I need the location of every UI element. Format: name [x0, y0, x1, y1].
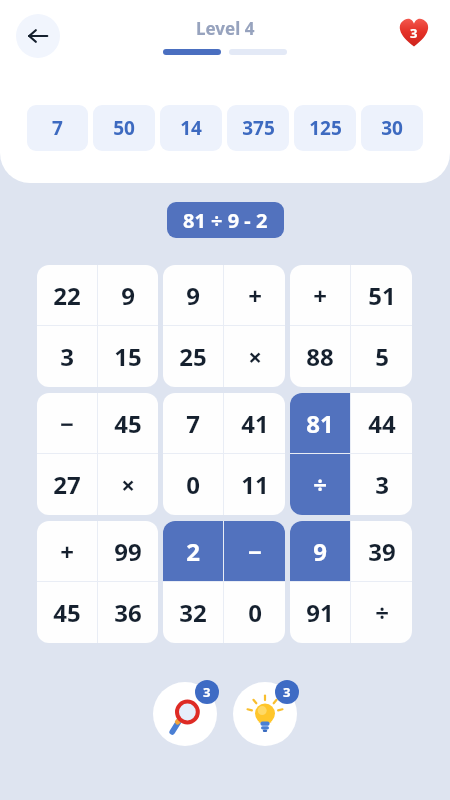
- button[interactable]: 25: [163, 326, 223, 387]
- staticText: −: [248, 535, 262, 568]
- button[interactable]: 91: [290, 582, 350, 643]
- staticText: 7: [52, 115, 63, 141]
- button[interactable]: −: [224, 521, 285, 581]
- button[interactable]: Find: [149, 678, 221, 750]
- button[interactable]: 41: [224, 393, 285, 453]
- button[interactable]: 3: [37, 326, 97, 387]
- staticText: 50: [113, 115, 135, 141]
- button[interactable]: 0: [224, 582, 285, 643]
- button[interactable]: 7: [27, 105, 88, 151]
- staticText: 9: [313, 535, 327, 568]
- button[interactable]: 99: [98, 521, 158, 581]
- staticText: +: [313, 279, 327, 312]
- staticText: 32: [179, 596, 207, 629]
- button[interactable]: 45: [37, 582, 97, 643]
- button[interactable]: 32: [163, 582, 223, 643]
- staticText: 3: [283, 683, 291, 701]
- staticText: 41: [241, 407, 269, 440]
- staticText: 2: [186, 535, 200, 568]
- button[interactable]: −: [37, 393, 97, 453]
- staticText: 45: [53, 596, 81, 629]
- button[interactable]: 11: [224, 454, 285, 515]
- button[interactable]: ÷: [351, 582, 412, 643]
- staticText: 27: [53, 468, 81, 501]
- button[interactable]: ×: [98, 454, 158, 515]
- staticText: 375: [242, 115, 275, 141]
- button[interactable]: 9: [290, 521, 350, 581]
- staticText: 45: [114, 407, 142, 440]
- staticText: 36: [114, 596, 142, 629]
- button[interactable]: 50: [93, 105, 155, 151]
- button[interactable]: 88: [290, 326, 350, 387]
- staticText: 3: [375, 468, 389, 501]
- staticText: 7: [186, 407, 200, 440]
- staticText: 3: [410, 24, 418, 42]
- button[interactable]: 81 ÷ 9 - 2: [183, 202, 268, 238]
- button[interactable]: 14: [160, 105, 222, 151]
- button[interactable]: +: [37, 521, 97, 581]
- staticText: 0: [186, 468, 200, 501]
- button[interactable]: 45: [98, 393, 158, 453]
- button[interactable]: 7: [163, 393, 223, 453]
- button[interactable]: 30: [361, 105, 423, 151]
- staticText: 91: [306, 596, 334, 629]
- button[interactable]: 15: [98, 326, 158, 387]
- staticText: 22: [53, 279, 81, 312]
- staticText: −: [60, 407, 74, 440]
- staticText: 14: [180, 115, 202, 141]
- button[interactable]: Hint: [229, 678, 301, 750]
- button[interactable]: 44: [351, 393, 412, 453]
- staticText: 81 ÷ 9 - 2: [183, 207, 268, 234]
- button[interactable]: Back: [16, 14, 60, 58]
- button[interactable]: 9: [163, 265, 223, 325]
- staticText: 15: [114, 340, 142, 373]
- staticText: 81: [306, 407, 334, 440]
- button[interactable]: ÷: [290, 454, 350, 515]
- staticText: 125: [309, 115, 342, 141]
- button[interactable]: 36: [98, 582, 158, 643]
- staticText: 25: [179, 340, 207, 373]
- button[interactable]: 51: [351, 265, 412, 325]
- button[interactable]: 5: [351, 326, 412, 387]
- button[interactable]: 22: [37, 265, 97, 325]
- button[interactable]: 9: [98, 265, 158, 325]
- button[interactable]: 3: [351, 454, 412, 515]
- staticText: +: [248, 279, 262, 312]
- button[interactable]: 375: [227, 105, 289, 151]
- staticText: 3: [60, 340, 74, 373]
- staticText: 99: [114, 535, 142, 568]
- staticText: ×: [248, 340, 262, 373]
- staticText: 51: [368, 279, 396, 312]
- staticText: 88: [306, 340, 334, 373]
- staticText: 9: [186, 279, 200, 312]
- button[interactable]: 27: [37, 454, 97, 515]
- staticText: 11: [241, 468, 269, 501]
- button[interactable]: 0: [163, 454, 223, 515]
- staticText: 3: [203, 683, 211, 701]
- staticText: Level 4: [196, 17, 255, 40]
- staticText: ×: [121, 468, 135, 501]
- staticText: 5: [375, 340, 389, 373]
- staticText: 30: [381, 115, 403, 141]
- staticText: 9: [121, 279, 135, 312]
- button[interactable]: 125: [294, 105, 356, 151]
- button[interactable]: 2: [163, 521, 223, 581]
- button[interactable]: 81: [290, 393, 350, 453]
- staticText: 39: [368, 535, 396, 568]
- button[interactable]: +: [290, 265, 350, 325]
- staticText: ÷: [375, 596, 389, 629]
- button[interactable]: 39: [351, 521, 412, 581]
- button[interactable]: +: [224, 265, 285, 325]
- staticText: 44: [368, 407, 396, 440]
- staticText: ÷: [313, 468, 327, 501]
- staticText: +: [60, 535, 74, 568]
- button[interactable]: ×: [224, 326, 285, 387]
- staticText: 0: [248, 596, 262, 629]
- button[interactable]: Lives: [392, 10, 436, 54]
